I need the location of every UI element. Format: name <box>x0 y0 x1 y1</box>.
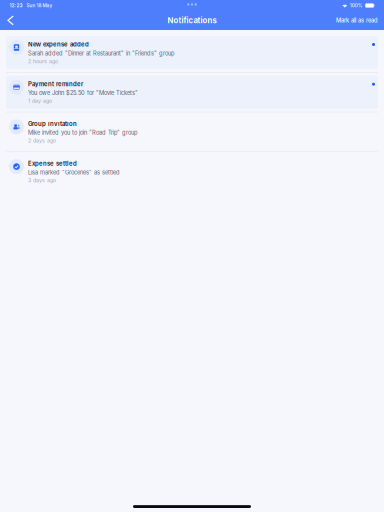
staticText: Lisa marked "Groceries" as settled <box>28 169 120 176</box>
button[interactable]: Group invitation <box>6 112 378 151</box>
staticText: Notifications <box>167 16 216 25</box>
staticText: Mark all as read <box>336 17 378 24</box>
button[interactable]: Payment reminder <box>6 73 378 112</box>
staticText: Payment reminder <box>28 80 83 88</box>
staticText: 3 days ago <box>28 177 56 184</box>
staticText: Expense settled <box>28 160 77 167</box>
staticText: Mike invited you to join "Road Trip" gro… <box>28 129 138 136</box>
staticText: New expense added <box>28 41 89 48</box>
button[interactable]: New expense added <box>6 33 378 72</box>
staticText: Sun 18 May <box>26 3 52 8</box>
staticText: Group invitation <box>28 120 77 127</box>
staticText: 2 days ago <box>28 137 56 144</box>
staticText: 2 hours ago <box>28 58 58 64</box>
staticText: Sarah added "Dinner at Restaurant" in "F… <box>28 50 175 57</box>
staticText: You owe John $25.50 for "Movie Tickets" <box>28 90 138 96</box>
button[interactable]: Mark all as read <box>331 13 383 28</box>
staticText: 1 day ago <box>28 98 52 104</box>
button[interactable]: Back <box>2 12 20 29</box>
staticText: 100% <box>350 3 363 8</box>
staticText: 12:23 <box>9 3 22 8</box>
button[interactable]: Expense settled <box>6 152 378 191</box>
